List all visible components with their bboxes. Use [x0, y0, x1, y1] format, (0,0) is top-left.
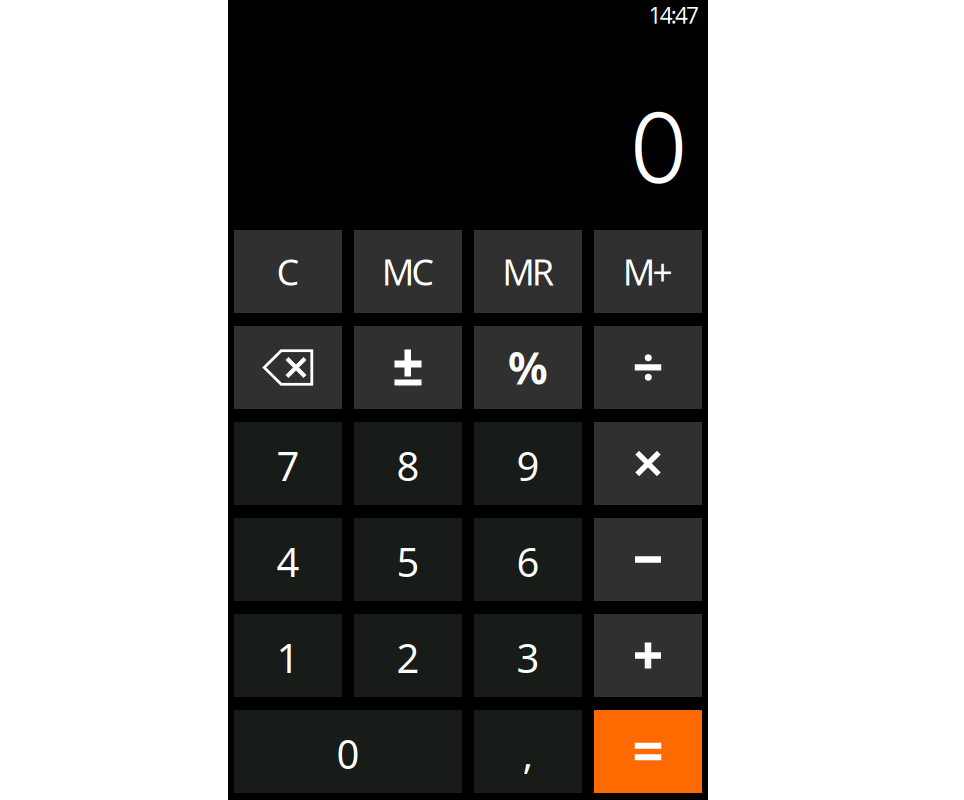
button[interactable]: 8: [354, 422, 462, 505]
button[interactable]: C: [234, 230, 342, 313]
button[interactable]: 0: [234, 710, 462, 793]
staticText: MC: [382, 248, 434, 295]
button[interactable]: Equals: [594, 710, 702, 793]
button[interactable]: 9: [474, 422, 582, 505]
button[interactable]: M+: [594, 230, 702, 313]
button[interactable]: Minus: [594, 518, 702, 601]
staticText: 9: [516, 439, 539, 492]
staticText: 6: [516, 535, 539, 588]
button[interactable]: Multiply: [594, 422, 702, 505]
staticText: ,: [522, 727, 533, 780]
button[interactable]: 1: [234, 614, 342, 697]
button[interactable]: 7: [234, 422, 342, 505]
button[interactable]: Backspace: [234, 326, 342, 409]
button[interactable]: 2: [354, 614, 462, 697]
button[interactable]: Plus: [594, 614, 702, 697]
staticText: 0: [336, 727, 359, 780]
button[interactable]: Plus or minus: [354, 326, 462, 409]
staticText: 1: [276, 631, 299, 684]
staticText: 7: [276, 439, 299, 492]
staticText: C: [276, 248, 299, 295]
staticText: 0: [629, 90, 688, 206]
staticText: %: [508, 338, 548, 397]
button[interactable]: 6: [474, 518, 582, 601]
button[interactable]: 4: [234, 518, 342, 601]
staticText: MR: [502, 248, 554, 295]
button[interactable]: MR: [474, 230, 582, 313]
button[interactable]: %: [474, 326, 582, 409]
staticText: 2: [396, 631, 419, 684]
staticText: 5: [396, 535, 419, 588]
button[interactable]: ,: [474, 710, 582, 793]
staticText: 8: [396, 439, 419, 492]
button[interactable]: 5: [354, 518, 462, 601]
button[interactable]: Divide: [594, 326, 702, 409]
staticText: 4: [276, 535, 299, 588]
button[interactable]: 3: [474, 614, 582, 697]
staticText: 3: [516, 631, 539, 684]
staticText: 14:47: [649, 0, 699, 30]
staticText: M+: [623, 248, 673, 295]
button[interactable]: MC: [354, 230, 462, 313]
